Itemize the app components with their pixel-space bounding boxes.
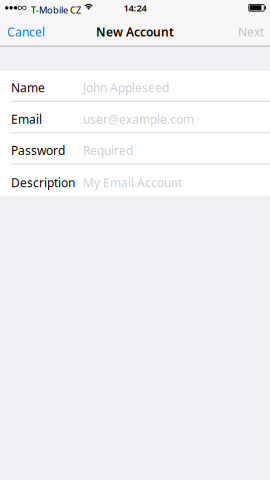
button[interactable]: Email [0, 102, 270, 133]
staticText: Description [11, 174, 75, 190]
staticText: Name [11, 80, 45, 96]
staticText: 14:24 [123, 2, 146, 14]
staticText: Password [11, 142, 65, 158]
staticText: Required [83, 142, 133, 158]
staticText: Email [11, 111, 42, 127]
button[interactable]: Name [0, 71, 270, 102]
staticText: Next [238, 24, 264, 40]
staticText: Cancel [7, 24, 45, 40]
button[interactable]: Next [229, 17, 270, 46]
staticText: John Appleseed [83, 80, 169, 96]
button[interactable]: Cancel [0, 17, 54, 46]
staticText: My Email Account [83, 174, 182, 190]
staticText: T-Mobile CZ [31, 4, 81, 16]
button[interactable]: Password [0, 133, 270, 165]
button[interactable]: Description [0, 165, 270, 196]
staticText: user@example.com [83, 111, 194, 127]
staticText: New Account [96, 24, 174, 40]
